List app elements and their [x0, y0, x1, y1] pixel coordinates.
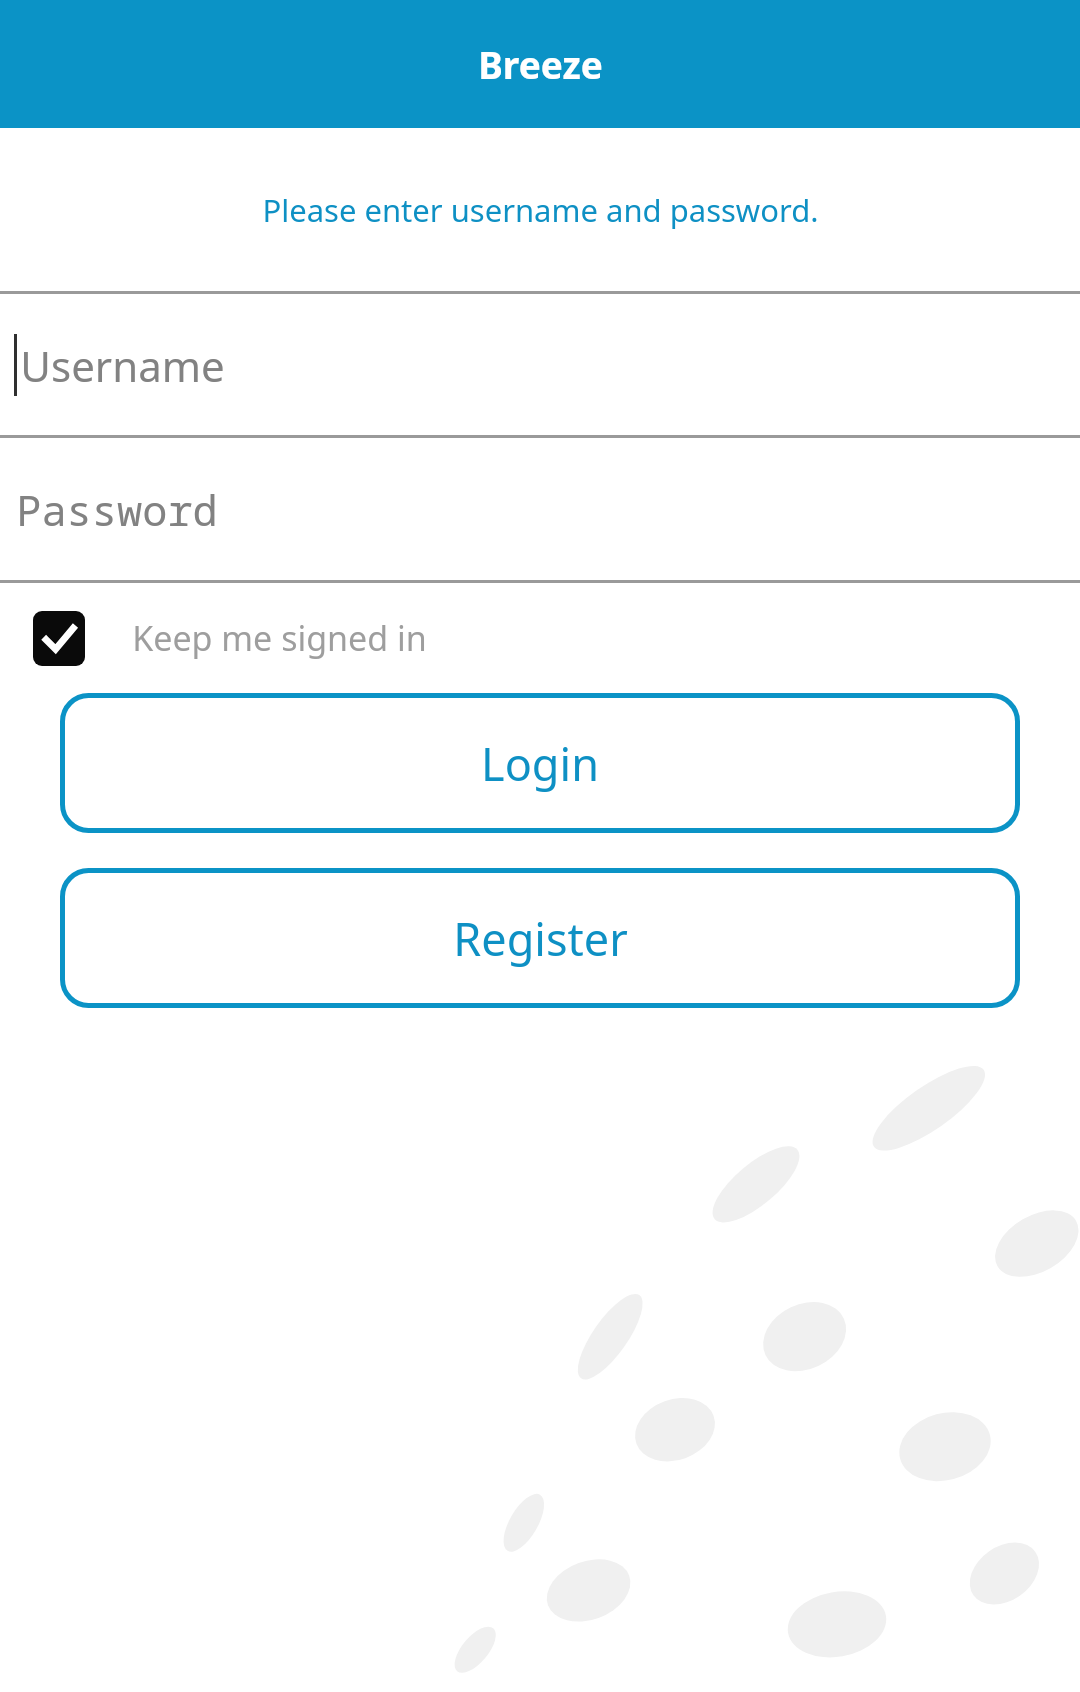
button[interactable]: Username: [0, 294, 1080, 435]
staticText: Please enter username and password.: [262, 189, 819, 231]
staticText: Login: [481, 733, 599, 794]
button[interactable]: Keep me signed in: [0, 583, 1080, 693]
button[interactable]: Register: [60, 868, 1020, 1008]
button[interactable]: Login: [60, 693, 1020, 833]
staticText: Password: [16, 481, 218, 538]
staticText: Register: [453, 908, 628, 969]
staticText: Username: [20, 337, 225, 394]
staticText: Keep me signed in: [132, 615, 427, 661]
button[interactable]: Password: [0, 438, 1080, 580]
staticText: Breeze: [478, 39, 603, 89]
